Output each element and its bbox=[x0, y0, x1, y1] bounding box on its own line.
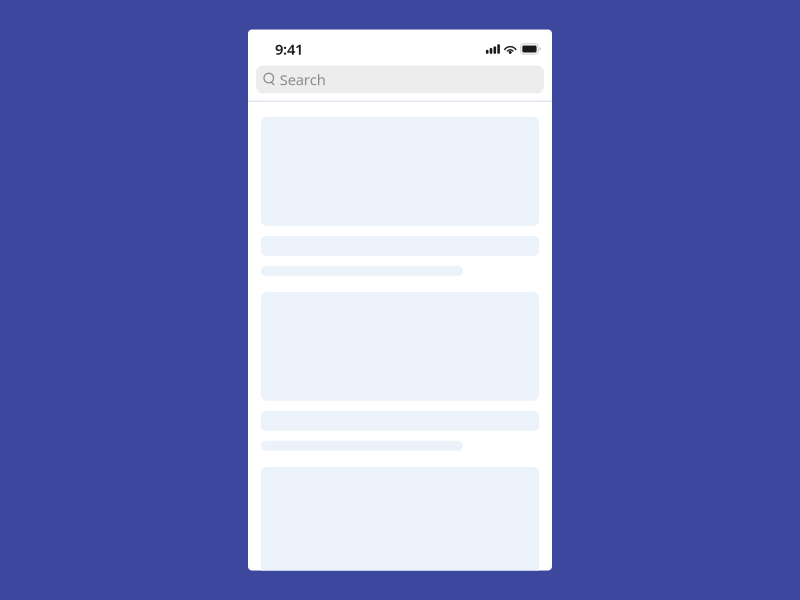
staticText: Search bbox=[280, 70, 326, 89]
button[interactable]: Search bbox=[256, 65, 544, 93]
staticText: 9:41 bbox=[275, 39, 303, 59]
